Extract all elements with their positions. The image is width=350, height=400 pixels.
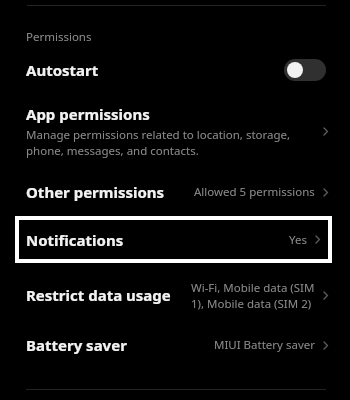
- staticText: Manage permissions related to location, …: [26, 127, 291, 158]
- staticText: Allowed 5 permissions: [194, 184, 315, 200]
- staticText: Yes: [289, 232, 307, 248]
- button[interactable]: Notifications: [15, 216, 332, 263]
- button[interactable]: Autostart: [0, 53, 350, 87]
- button[interactable]: Autostart toggle, off: [284, 59, 326, 81]
- staticText: Wi-Fi, Mobile data (SIM 1), Mobile data …: [191, 280, 315, 311]
- staticText: Battery saver: [26, 335, 127, 355]
- staticText: MIUI Battery saver: [214, 337, 315, 353]
- staticText: Notifications: [26, 230, 124, 250]
- button[interactable]: Restrict data usage: [0, 272, 350, 318]
- button[interactable]: Other permissions: [0, 175, 350, 209]
- button[interactable]: Battery saver: [0, 328, 350, 362]
- staticText: Permissions: [26, 29, 92, 45]
- button[interactable]: App permissions: [0, 101, 350, 161]
- staticText: Restrict data usage: [26, 285, 171, 305]
- staticText: Autostart: [26, 60, 284, 80]
- staticText: App permissions: [26, 104, 150, 124]
- staticText: Other permissions: [26, 182, 165, 202]
